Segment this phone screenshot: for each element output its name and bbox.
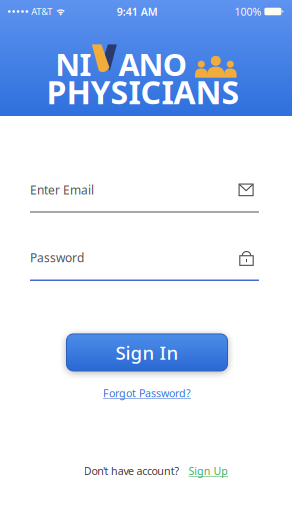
staticText: NI <box>55 44 91 84</box>
staticText: ANO <box>118 44 187 84</box>
button[interactable]: Sign Up <box>188 464 228 478</box>
staticText: PHYSICIANS <box>46 70 239 113</box>
staticText: Sign Up <box>188 464 228 478</box>
button[interactable]: Forgot Password? <box>103 386 191 400</box>
staticText: Sign In <box>115 340 178 365</box>
button[interactable]: Password <box>30 249 259 281</box>
button[interactable]: Enter Email <box>30 182 259 212</box>
button[interactable]: Sign In <box>66 334 227 371</box>
staticText: 100% <box>234 4 261 19</box>
staticText: 9:41 AM <box>117 4 158 19</box>
staticText: Forgot Password? <box>103 386 191 400</box>
staticText: AT&T <box>31 5 52 18</box>
staticText: Don't have account? <box>84 464 179 478</box>
staticText: Password <box>30 249 84 265</box>
staticText: Enter Email <box>30 182 94 198</box>
